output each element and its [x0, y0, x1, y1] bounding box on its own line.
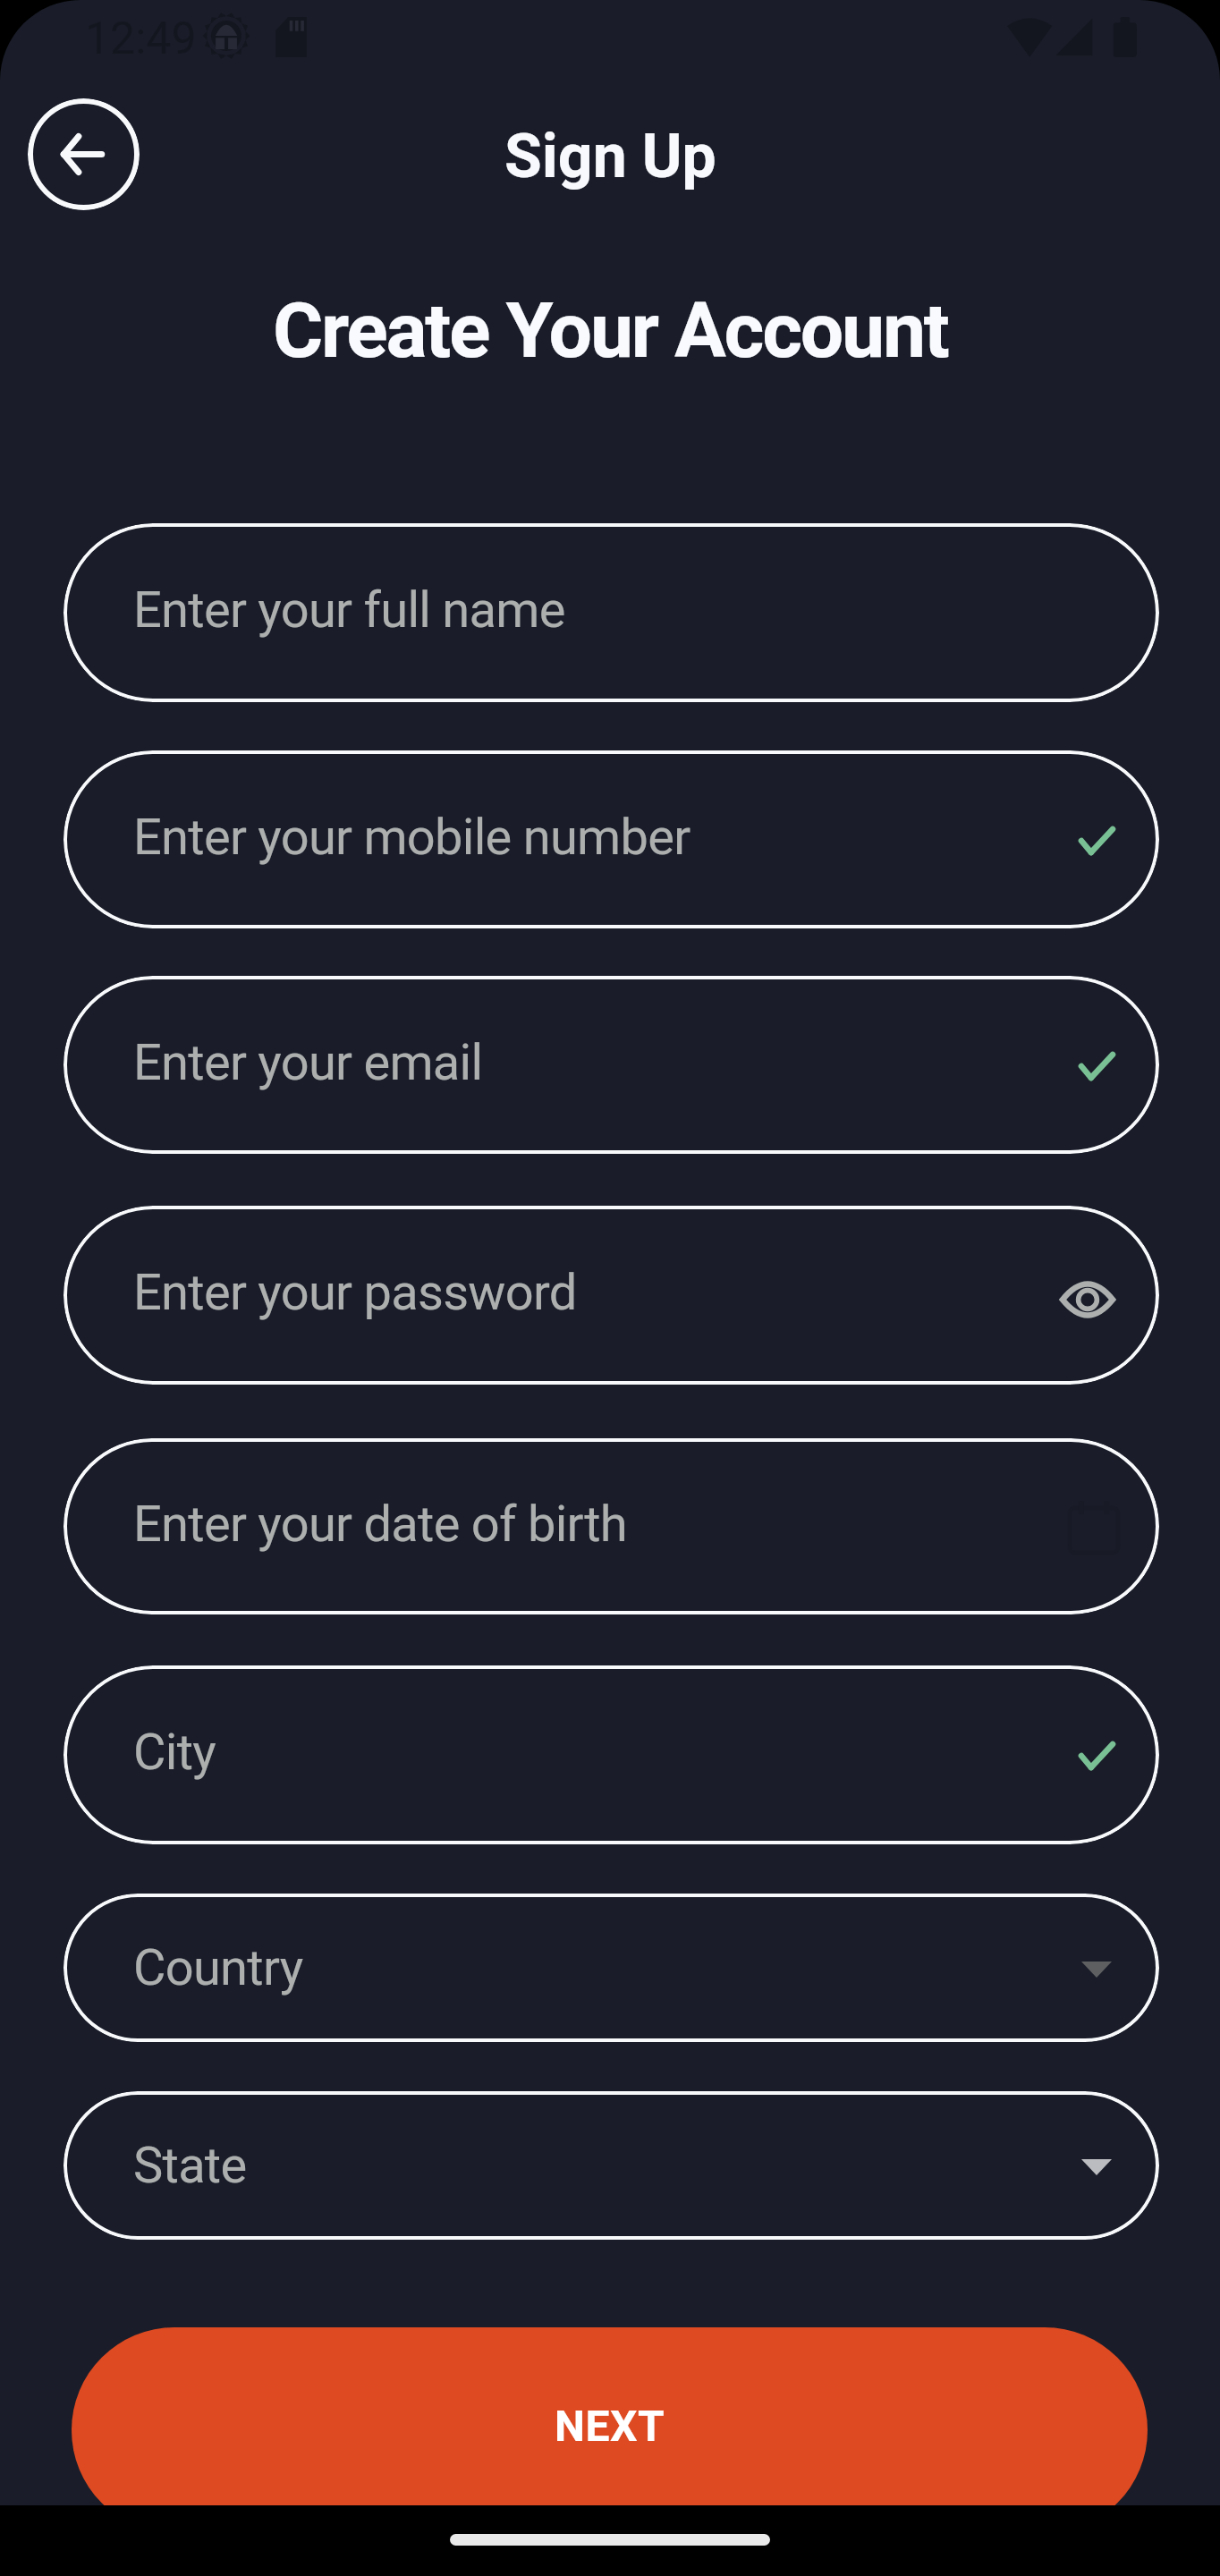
- button[interactable]: NEXT: [72, 2327, 1148, 2505]
- button[interactable]: Enter your full name: [64, 523, 1159, 702]
- button[interactable]: City: [64, 1665, 1159, 1844]
- button[interactable]: Open dropdown: [1061, 2131, 1132, 2203]
- staticText: Sign Up: [504, 121, 716, 192]
- staticText: State: [133, 2136, 247, 2195]
- other: Valid: [1061, 805, 1132, 877]
- staticText: 12:49: [85, 13, 197, 65]
- button[interactable]: Enter your email: [64, 976, 1159, 1154]
- staticText: Enter your email: [133, 1033, 483, 1092]
- button[interactable]: Country: [64, 1894, 1159, 2042]
- staticText: Enter your full name: [133, 580, 565, 640]
- staticText: City: [133, 1723, 216, 1782]
- staticText: Enter your date of birth: [133, 1495, 627, 1554]
- other: Valid: [1061, 1720, 1132, 1792]
- other: Valid: [1061, 1030, 1132, 1102]
- staticText: Country: [133, 1938, 303, 1997]
- staticText: Enter your password: [133, 1263, 577, 1322]
- staticText: NEXT: [555, 2401, 665, 2451]
- staticText: Create Your Account: [273, 285, 948, 376]
- button[interactable]: Back: [28, 98, 140, 210]
- button[interactable]: State: [64, 2091, 1159, 2240]
- button[interactable]: Enter your password: [64, 1206, 1159, 1385]
- staticText: Enter your mobile number: [133, 808, 690, 867]
- button[interactable]: Enter your mobile number: [64, 750, 1159, 928]
- button[interactable]: Enter your date of birth: [64, 1438, 1159, 1614]
- button[interactable]: Open dropdown: [1061, 1934, 1132, 2005]
- button[interactable]: Show password: [1045, 1257, 1131, 1343]
